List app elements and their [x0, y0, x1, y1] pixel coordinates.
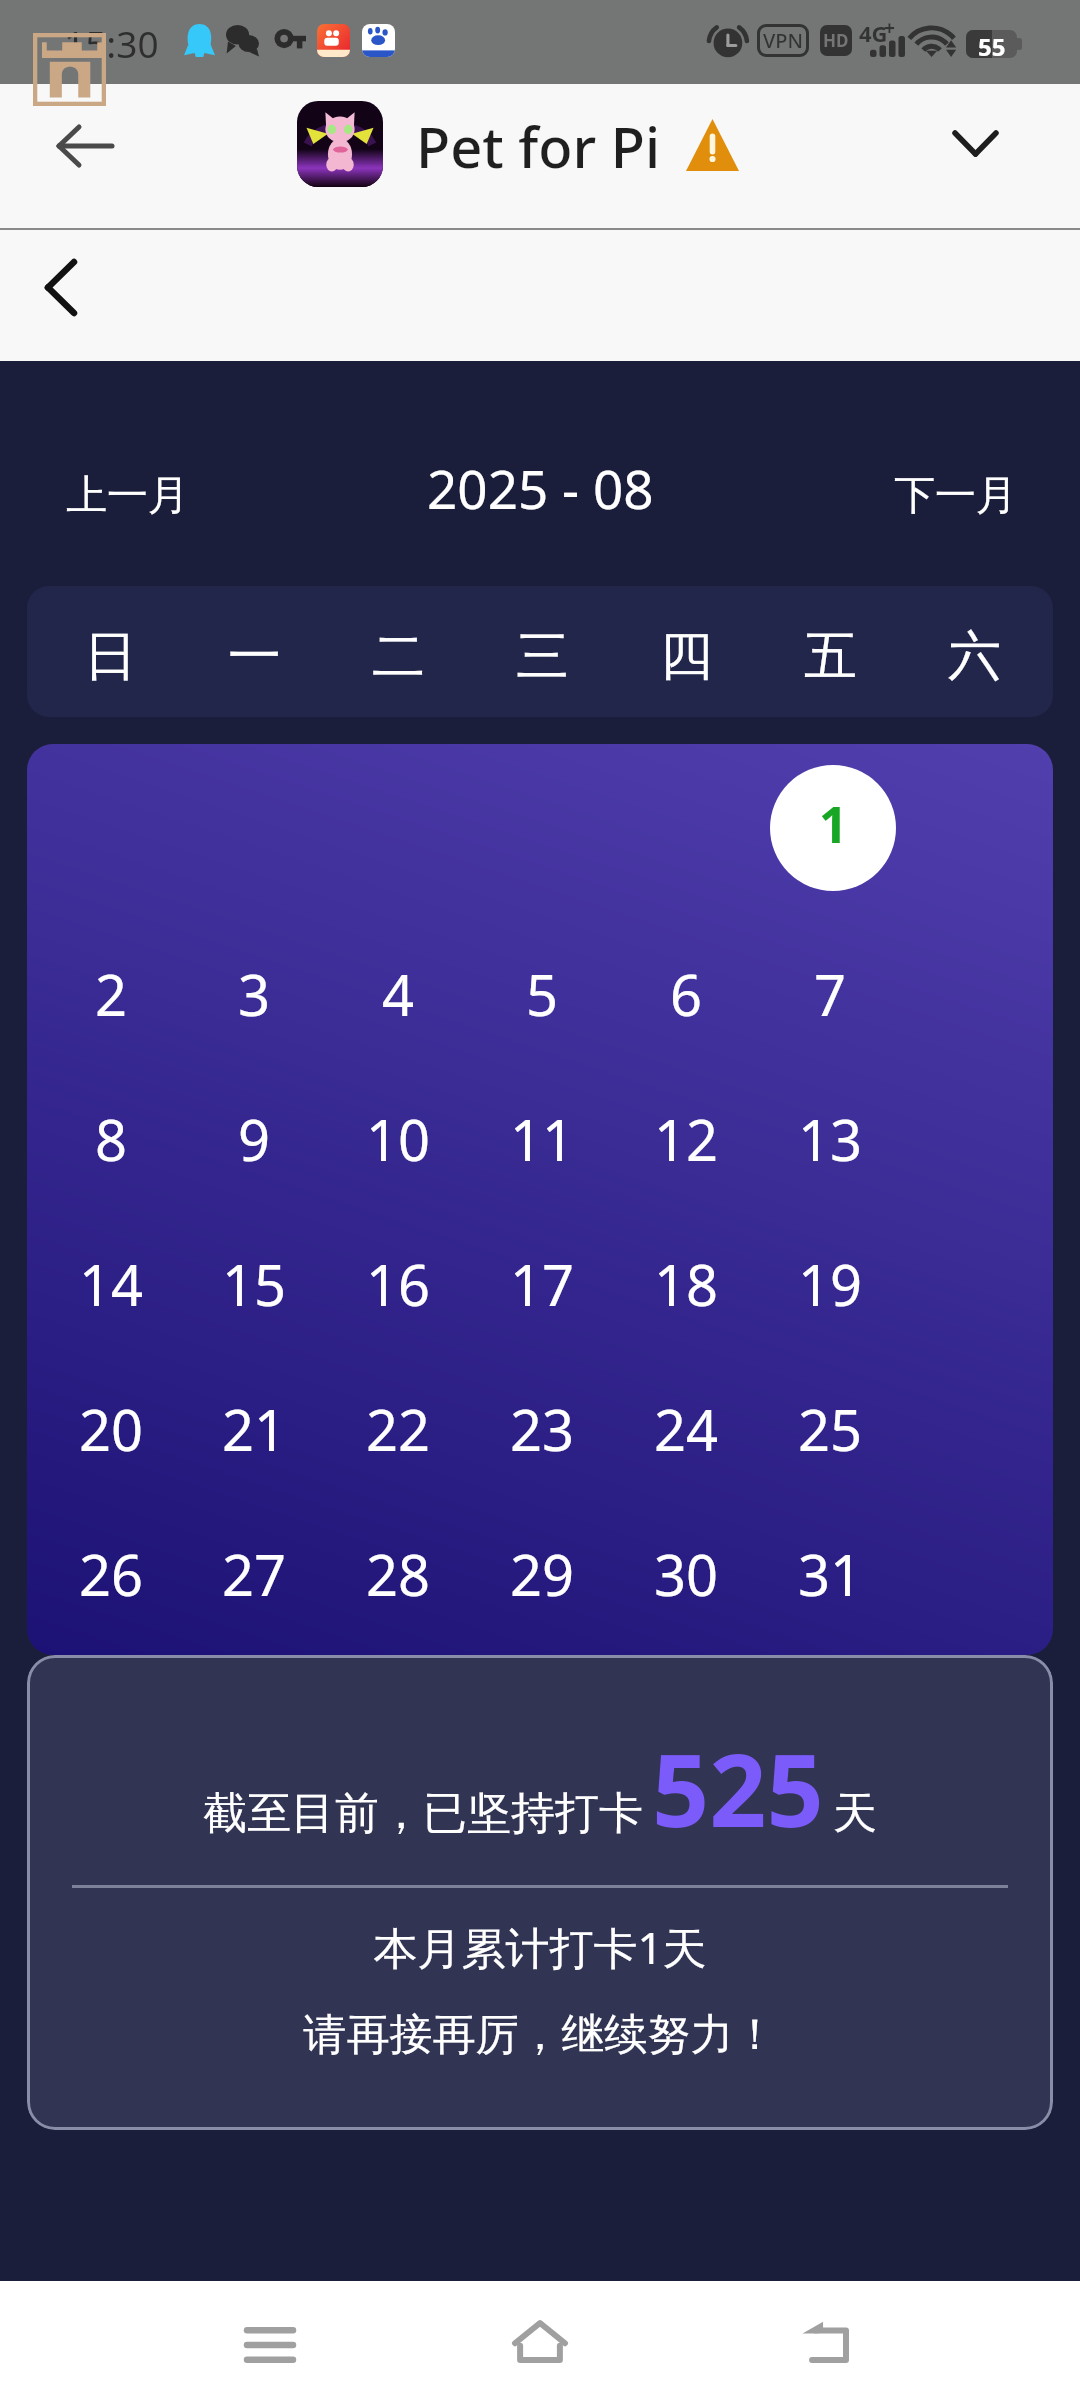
button[interactable]: 23	[487, 1391, 597, 1463]
staticText: HD	[823, 29, 849, 52]
button[interactable]: Home	[480, 2281, 600, 2401]
staticText: 一	[228, 623, 281, 690]
staticText: 10	[366, 1101, 431, 1173]
button[interactable]: 27	[199, 1536, 309, 1608]
button[interactable]: 26	[56, 1536, 166, 1608]
staticText: 6	[670, 956, 703, 1028]
staticText: 本月累计打卡1天	[27, 1917, 1053, 1977]
button[interactable]: 31	[775, 1536, 885, 1608]
button[interactable]: 17	[487, 1246, 597, 1318]
button[interactable]: 18	[631, 1246, 741, 1318]
staticText: 四	[660, 623, 713, 690]
staticText: 525	[652, 1720, 824, 1840]
staticText: 18	[654, 1246, 719, 1318]
staticText: VPN	[763, 27, 804, 54]
staticText: 11	[510, 1101, 575, 1173]
staticText: 22	[366, 1391, 431, 1463]
button[interactable]: Back	[765, 2282, 885, 2402]
button[interactable]: 上一月	[37, 446, 217, 542]
button[interactable]: 下一月	[865, 446, 1045, 542]
button[interactable]: 9	[199, 1101, 309, 1173]
button[interactable]: Expand	[933, 101, 1017, 185]
staticText: 17	[510, 1246, 575, 1318]
staticText: 29	[510, 1536, 575, 1608]
staticText: 26	[79, 1536, 144, 1608]
staticText: 2	[95, 956, 128, 1028]
staticText: Pet for Pi	[416, 108, 661, 184]
button[interactable]: 5	[487, 956, 597, 1028]
button[interactable]: 28	[343, 1536, 453, 1608]
staticText: 7	[814, 956, 847, 1028]
button[interactable]: 7	[775, 956, 885, 1028]
button[interactable]: Back	[42, 104, 126, 188]
staticText: 13	[798, 1101, 863, 1173]
staticText: 截至目前，已坚持打卡	[203, 1786, 643, 1841]
staticText: 天	[833, 1786, 877, 1841]
staticText: 9	[238, 1101, 271, 1173]
staticText: 五	[804, 623, 857, 690]
staticText: 24	[654, 1391, 719, 1463]
staticText: 30	[654, 1536, 719, 1608]
staticText: 19	[798, 1246, 863, 1318]
button[interactable]: 19	[775, 1246, 885, 1318]
staticText: 31	[798, 1536, 863, 1608]
button[interactable]: Recent apps	[210, 2285, 330, 2405]
staticText: +	[884, 15, 895, 41]
staticText: 1	[819, 790, 848, 858]
button[interactable]: 15	[199, 1246, 309, 1318]
button[interactable]: 1	[770, 765, 896, 891]
button[interactable]: 29	[487, 1536, 597, 1608]
staticText: 日	[84, 623, 137, 690]
staticText: 请再接再厉，继续努力！	[27, 2008, 1053, 2062]
staticText: 23	[510, 1391, 575, 1463]
staticText: 4G	[859, 18, 888, 48]
staticText: 15	[222, 1246, 287, 1318]
staticText: 28	[366, 1536, 431, 1608]
button[interactable]: 12	[631, 1101, 741, 1173]
button[interactable]: 30	[631, 1536, 741, 1608]
staticText: 55	[978, 30, 1006, 58]
staticText: 16	[366, 1246, 431, 1318]
staticText: 25	[798, 1391, 863, 1463]
button[interactable]: 16	[343, 1246, 453, 1318]
staticText: 20	[79, 1391, 144, 1463]
staticText: 12	[654, 1101, 719, 1173]
button[interactable]: 14	[56, 1246, 166, 1318]
staticText: 六	[948, 623, 1001, 690]
button[interactable]: 3	[199, 956, 309, 1028]
staticText: 2025 - 08	[427, 452, 654, 524]
button[interactable]: 22	[343, 1391, 453, 1463]
button[interactable]: 24	[631, 1391, 741, 1463]
button[interactable]: Navigate up	[19, 245, 103, 329]
button[interactable]: 21	[199, 1391, 309, 1463]
staticText: 21	[222, 1391, 287, 1463]
staticText: 27	[222, 1536, 287, 1608]
staticText: 14	[79, 1246, 144, 1318]
button[interactable]: 8	[56, 1101, 166, 1173]
staticText: 15:30	[64, 18, 159, 68]
staticText: 3	[238, 956, 271, 1028]
button[interactable]: 10	[343, 1101, 453, 1173]
staticText: 4	[382, 956, 415, 1028]
button[interactable]: 20	[56, 1391, 166, 1463]
staticText: 上一月	[66, 470, 189, 522]
staticText: 二	[372, 623, 425, 690]
button[interactable]: 13	[775, 1101, 885, 1173]
staticText: 三	[516, 623, 569, 690]
button[interactable]: 11	[487, 1101, 597, 1173]
button[interactable]: 25	[775, 1391, 885, 1463]
button[interactable]: 2	[56, 956, 166, 1028]
button[interactable]: 6	[631, 956, 741, 1028]
button[interactable]: 4	[343, 956, 453, 1028]
staticText: 8	[95, 1101, 128, 1173]
staticText: 5	[526, 956, 559, 1028]
staticText: 下一月	[894, 470, 1017, 522]
